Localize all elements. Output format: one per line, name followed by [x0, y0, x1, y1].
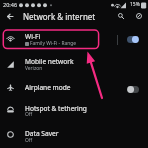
staticText: Hotspot & tethering: [25, 104, 87, 113]
button[interactable]: Back: [2, 8, 18, 24]
staticText: Wi-Fi: [25, 32, 41, 41]
button[interactable]: Help: [131, 8, 147, 24]
button[interactable]: Data Saver: [0, 125, 148, 148]
staticText: Mobile network: [25, 57, 74, 66]
button[interactable]: Airplane mode on off: [122, 79, 144, 100]
staticText: Off: [25, 137, 33, 144]
button[interactable]: Mobile network: [0, 54, 148, 79]
button[interactable]: Search: [113, 8, 129, 24]
staticText: Airplane mode: [25, 83, 71, 92]
staticText: Data Saver: [25, 129, 59, 138]
staticText: 15%: [130, 1, 140, 8]
staticText: 20:46: [3, 1, 18, 8]
staticText: Off: [25, 111, 33, 118]
button[interactable]: Airplane mode: [0, 79, 148, 100]
button[interactable]: Wi-Fi on off: [122, 29, 144, 50]
staticText: Family Wi-Fi - Range: [30, 40, 77, 47]
button[interactable]: Wi-Fi: [0, 29, 99, 50]
staticText: Verizon: [25, 65, 43, 72]
staticText: Network & internet: [23, 11, 96, 22]
button[interactable]: Hotspot & tethering: [0, 100, 148, 125]
